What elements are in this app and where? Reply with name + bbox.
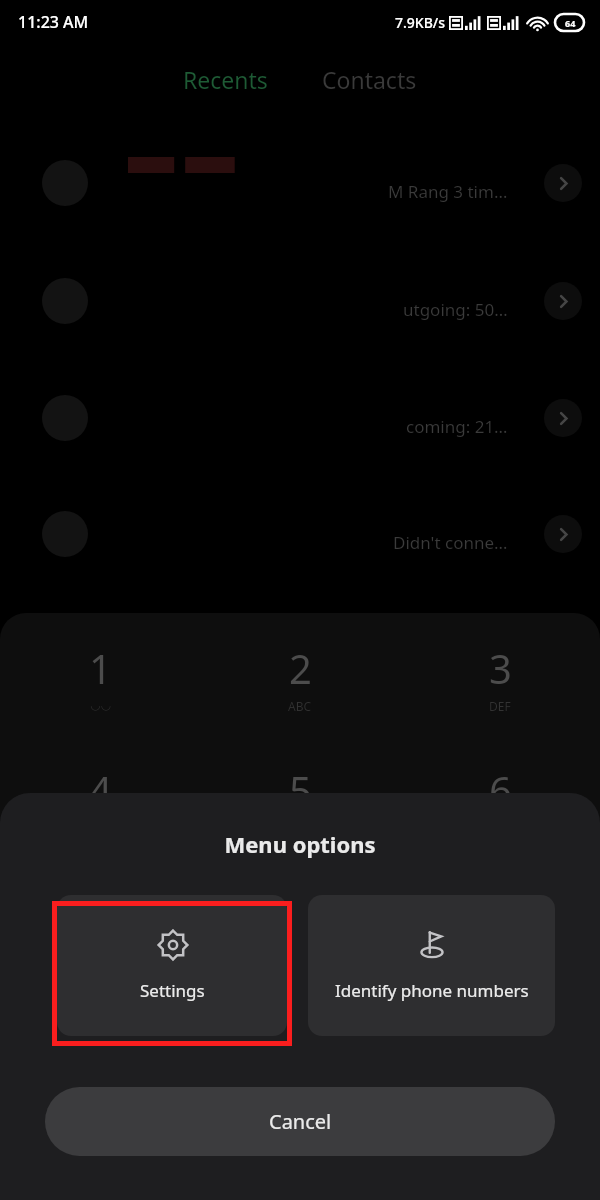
staticText: 4 <box>89 763 112 817</box>
staticText: ABC <box>288 698 312 714</box>
staticText: 11:23 AM <box>18 11 89 33</box>
button[interactable]: coming: 21… <box>0 380 600 456</box>
staticText: M Rang 3 tim… <box>388 180 508 203</box>
staticText: Identify phone numbers <box>335 979 529 1002</box>
staticText: Menu options <box>0 829 600 859</box>
staticText: 1 <box>89 641 112 695</box>
button[interactable]: 5 <box>200 763 400 885</box>
button[interactable]: 6 <box>400 763 600 885</box>
button[interactable]: M Rang 3 tim… <box>0 145 600 221</box>
button[interactable]: Cancel <box>45 1087 555 1156</box>
staticText: 5 <box>289 763 312 817</box>
staticText: Didn't conne… <box>393 531 508 554</box>
button[interactable]: 4 <box>0 763 200 885</box>
button[interactable]: Call details <box>544 164 582 202</box>
staticText: 6 <box>489 763 512 817</box>
staticText: 7.9KB/s <box>395 13 446 32</box>
staticText: Cancel <box>269 1108 332 1135</box>
button[interactable]: 1 <box>0 641 200 763</box>
button[interactable]: Recents <box>183 64 268 95</box>
button[interactable]: 2 <box>200 641 400 763</box>
staticText: utgoing: 50… <box>403 298 508 321</box>
button[interactable]: Call details <box>544 282 582 320</box>
staticText: DEF <box>489 698 511 714</box>
button[interactable]: 3 <box>400 641 600 763</box>
button[interactable]: Didn't conne… <box>0 496 600 572</box>
staticText: coming: 21… <box>406 415 508 438</box>
button[interactable]: utgoing: 50… <box>0 263 600 339</box>
button[interactable]: Identify phone numbers <box>308 895 555 1036</box>
staticText: Settings <box>140 979 205 1002</box>
button[interactable]: Call details <box>544 515 582 553</box>
staticText: Contacts <box>322 64 417 95</box>
staticText: ◡◡ <box>90 698 111 712</box>
button[interactable]: Settings <box>57 895 287 1036</box>
staticText: 64 <box>565 17 576 29</box>
staticText: 3 <box>489 641 512 695</box>
button[interactable]: Call details <box>544 399 582 437</box>
button[interactable]: Contacts <box>322 64 417 95</box>
staticText: Recents <box>183 64 268 95</box>
staticText: 2 <box>289 641 312 695</box>
